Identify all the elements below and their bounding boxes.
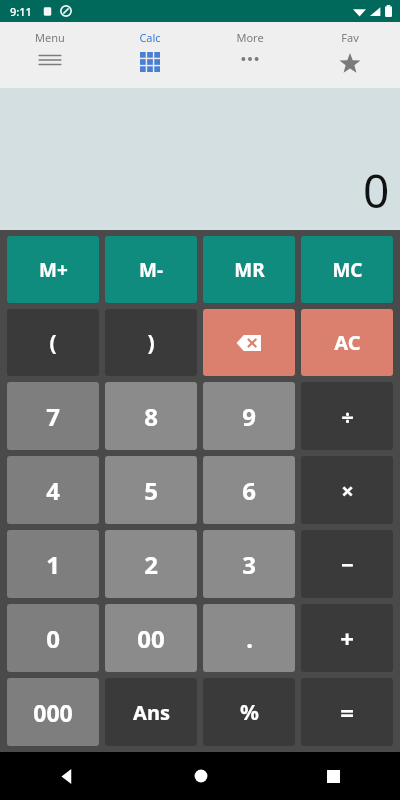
button[interactable]: MR: [203, 236, 295, 303]
button[interactable]: More: [200, 22, 300, 88]
button[interactable]: Home: [134, 752, 267, 800]
button[interactable]: MC: [301, 236, 393, 303]
staticText: 000: [33, 697, 73, 728]
button[interactable]: 0: [7, 604, 99, 672]
staticText: ): [147, 328, 155, 357]
button[interactable]: .: [203, 604, 295, 672]
staticText: MR: [234, 257, 265, 283]
staticText: 8: [144, 400, 158, 433]
staticText: 9:11: [10, 4, 32, 19]
staticText: Calc: [139, 30, 161, 45]
button[interactable]: ): [105, 309, 197, 376]
staticText: +: [340, 622, 354, 655]
staticText: MC: [332, 257, 363, 283]
button[interactable]: Recent apps: [267, 752, 400, 800]
staticText: 6: [242, 474, 256, 507]
button[interactable]: Menu: [0, 22, 100, 88]
button[interactable]: 1: [7, 530, 99, 598]
button[interactable]: 2: [105, 530, 197, 598]
staticText: 0: [363, 159, 390, 222]
button[interactable]: 7: [7, 382, 99, 450]
staticText: 2: [144, 548, 158, 581]
button[interactable]: 000: [7, 678, 99, 746]
staticText: More: [236, 30, 264, 45]
button[interactable]: M-: [105, 236, 197, 303]
button[interactable]: +: [301, 604, 393, 672]
staticText: ÷: [341, 401, 354, 431]
staticText: M+: [39, 257, 68, 283]
staticText: 0: [46, 622, 60, 655]
button[interactable]: Ans: [105, 678, 197, 746]
staticText: Menu: [35, 30, 65, 45]
button[interactable]: Backspace: [203, 309, 295, 376]
button[interactable]: 5: [105, 456, 197, 524]
staticText: −: [341, 549, 354, 579]
button[interactable]: 9: [203, 382, 295, 450]
button[interactable]: Back: [0, 752, 134, 800]
button[interactable]: AC: [301, 309, 393, 376]
staticText: AC: [334, 329, 361, 356]
button[interactable]: Calc: [100, 22, 200, 88]
staticText: ×: [341, 475, 354, 505]
staticText: 9: [242, 400, 256, 433]
button[interactable]: Fav: [300, 22, 400, 88]
staticText: Ans: [133, 699, 170, 726]
button[interactable]: −: [301, 530, 393, 598]
staticText: 1: [46, 548, 60, 581]
button[interactable]: 6: [203, 456, 295, 524]
button[interactable]: %: [203, 678, 295, 746]
staticText: 4: [46, 474, 60, 507]
button[interactable]: =: [301, 678, 393, 746]
staticText: .: [246, 622, 253, 655]
staticText: %: [240, 698, 259, 727]
button[interactable]: M+: [7, 236, 99, 303]
button[interactable]: 8: [105, 382, 197, 450]
staticText: (: [49, 328, 57, 357]
button[interactable]: ×: [301, 456, 393, 524]
button[interactable]: 00: [105, 604, 197, 672]
staticText: 00: [137, 622, 165, 655]
button[interactable]: 4: [7, 456, 99, 524]
staticText: =: [340, 696, 354, 729]
button[interactable]: ÷: [301, 382, 393, 450]
staticText: 7: [46, 400, 60, 433]
staticText: Fav: [341, 30, 359, 45]
staticText: 5: [144, 474, 158, 507]
button[interactable]: 3: [203, 530, 295, 598]
staticText: M-: [139, 257, 163, 283]
staticText: 3: [242, 548, 256, 581]
button[interactable]: (: [7, 309, 99, 376]
